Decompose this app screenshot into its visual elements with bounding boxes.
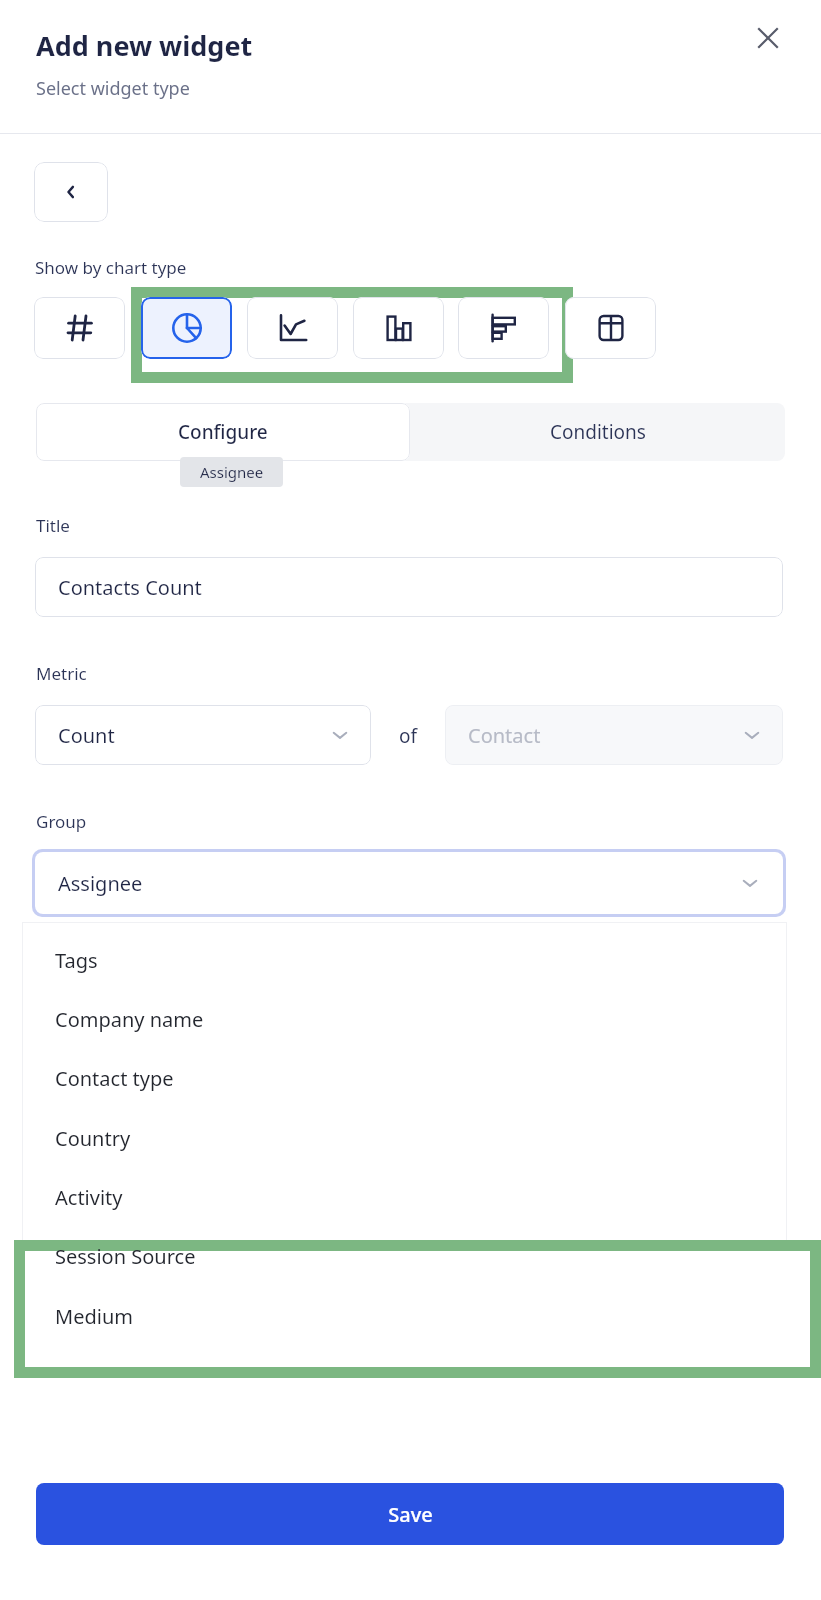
- staticText: Country: [55, 1125, 131, 1152]
- button[interactable]: Table: [565, 297, 656, 359]
- button[interactable]: Session Source: [22, 1236, 787, 1276]
- staticText: of: [399, 723, 418, 749]
- staticText: Tags: [55, 947, 98, 974]
- staticText: Group: [36, 810, 87, 833]
- staticText: Company name: [55, 1006, 204, 1033]
- button[interactable]: Number widget: [34, 297, 125, 359]
- staticText: Assignee: [200, 462, 264, 482]
- button[interactable]: Back: [34, 162, 108, 222]
- button[interactable]: Bar chart: [458, 297, 549, 359]
- staticText: Activity: [55, 1184, 123, 1211]
- button[interactable]: Contact type: [22, 1058, 787, 1098]
- staticText: Contacts Count: [58, 574, 202, 601]
- button[interactable]: Conditions: [410, 403, 785, 461]
- staticText: Select widget type: [36, 76, 190, 101]
- staticText: Count: [58, 722, 115, 749]
- staticText: Contact: [468, 722, 541, 749]
- button[interactable]: Contact: [445, 705, 783, 765]
- staticText: Metric: [36, 662, 87, 685]
- button[interactable]: Column chart: [353, 297, 444, 359]
- staticText: Configure: [178, 419, 268, 445]
- button[interactable]: Count: [35, 705, 371, 765]
- staticText: Contact type: [55, 1065, 174, 1092]
- button[interactable]: Country: [22, 1118, 787, 1158]
- button[interactable]: Save: [36, 1483, 784, 1545]
- button[interactable]: Pie chart: [141, 297, 232, 359]
- staticText: Assignee: [58, 870, 143, 897]
- button[interactable]: Contacts Count: [35, 557, 783, 617]
- staticText: Medium: [55, 1303, 133, 1330]
- staticText: Show by chart type: [35, 256, 187, 279]
- button[interactable]: Close: [744, 14, 792, 62]
- button[interactable]: Medium: [22, 1296, 787, 1336]
- staticText: Add new widget: [36, 27, 253, 64]
- button[interactable]: Activity: [22, 1177, 787, 1217]
- button[interactable]: Tags: [22, 940, 787, 980]
- button[interactable]: Assignee: [35, 852, 783, 914]
- staticText: Save: [388, 1501, 433, 1528]
- button[interactable]: Line chart: [247, 297, 338, 359]
- staticText: Title: [36, 514, 70, 537]
- button[interactable]: Company name: [22, 999, 787, 1039]
- staticText: Conditions: [550, 419, 646, 445]
- button[interactable]: Configure: [36, 403, 410, 461]
- staticText: Session Source: [55, 1243, 196, 1270]
